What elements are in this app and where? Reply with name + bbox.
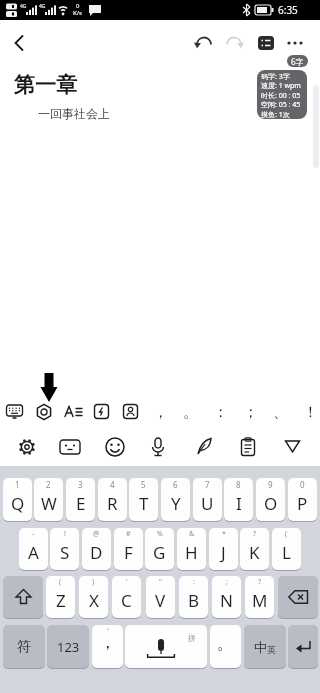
button[interactable]: 6 <box>161 478 190 521</box>
staticText: 2 <box>46 479 51 490</box>
staticText: 。 <box>183 403 198 422</box>
button[interactable]: # <box>114 528 143 570</box>
staticText: : <box>193 577 195 587</box>
button[interactable]: ? <box>245 576 274 618</box>
button[interactable] <box>10 33 30 53</box>
button[interactable]: 。 <box>176 398 204 426</box>
staticText: % <box>157 529 163 539</box>
button[interactable] <box>150 437 166 458</box>
button[interactable]: 、 <box>266 398 294 426</box>
button[interactable]: 5 <box>129 478 158 521</box>
button[interactable]: 2 <box>34 478 63 521</box>
staticText: X <box>89 589 99 612</box>
button[interactable]: 7 <box>193 478 222 521</box>
button[interactable]: ) <box>79 576 108 618</box>
button[interactable]: ' <box>112 576 141 618</box>
staticText: F <box>124 541 133 564</box>
button[interactable]: ( <box>46 576 75 618</box>
button[interactable]: 拼 <box>125 625 207 668</box>
button[interactable]: - <box>19 528 48 570</box>
staticText: M <box>252 589 268 612</box>
button[interactable]: 3 <box>66 478 95 521</box>
button[interactable]: ： <box>206 398 234 426</box>
staticText: 8 <box>236 479 241 490</box>
staticText: 速度: 1 wpm <box>261 81 301 91</box>
button[interactable]: 8 <box>224 478 253 521</box>
button[interactable] <box>5 403 25 422</box>
staticText: ( <box>59 577 62 587</box>
button[interactable]: ; <box>212 576 241 618</box>
staticText: T <box>139 492 149 515</box>
staticText: N <box>220 589 233 612</box>
button[interactable]: " <box>146 576 175 618</box>
button[interactable]: 123 <box>47 625 89 668</box>
staticText: 时长: 00 : 05 <box>261 91 301 101</box>
staticText: 拼 <box>188 633 196 643</box>
staticText: 9 <box>268 479 273 490</box>
button[interactable] <box>64 403 84 421</box>
button[interactable]: : <box>179 576 208 618</box>
staticText: " <box>159 577 162 587</box>
button[interactable] <box>286 34 304 52</box>
button[interactable]: 1 <box>3 478 32 521</box>
button[interactable] <box>278 576 318 618</box>
button[interactable]: 符 <box>3 625 45 668</box>
button[interactable] <box>3 576 43 618</box>
staticText: 5 <box>141 479 146 490</box>
button[interactable]: 0 <box>288 478 317 521</box>
staticText: 摸鱼: 1次 <box>261 110 290 119</box>
button[interactable]: * <box>209 528 238 570</box>
button[interactable]: ！ <box>296 398 320 426</box>
staticText: 码字: 3字 <box>261 72 290 82</box>
staticText: 4 <box>110 479 115 490</box>
staticText: 123 <box>57 638 80 656</box>
button[interactable]: ? <box>240 528 269 570</box>
button[interactable]: & <box>177 528 206 570</box>
staticText: L <box>282 541 291 564</box>
button[interactable] <box>195 34 213 52</box>
staticText: 6字 <box>291 56 304 67</box>
staticText: ， <box>153 403 168 422</box>
staticText: 、 <box>273 403 288 422</box>
staticText: 第一章 <box>14 72 77 98</box>
button[interactable] <box>240 437 256 457</box>
button[interactable] <box>16 436 38 458</box>
staticText: 一回事社会上 <box>38 106 110 121</box>
button[interactable]: @ <box>82 528 111 570</box>
staticText: A <box>28 541 39 564</box>
button[interactable]: ； <box>236 398 264 426</box>
button[interactable] <box>195 437 213 457</box>
staticText: U <box>201 492 214 515</box>
button[interactable]: 中 <box>244 625 286 668</box>
staticText: C <box>121 589 132 612</box>
button[interactable] <box>284 439 301 454</box>
button[interactable]: ( <box>272 528 301 570</box>
button[interactable]: ! <box>50 528 79 570</box>
staticText: S <box>60 541 70 564</box>
button[interactable]: 9 <box>256 478 285 521</box>
staticText: O <box>264 492 278 515</box>
staticText: 4G <box>39 3 46 10</box>
button[interactable]: ' <box>92 625 123 668</box>
button[interactable] <box>225 34 243 52</box>
button[interactable]: 4 <box>98 478 127 521</box>
button[interactable] <box>35 403 53 421</box>
button[interactable] <box>288 625 318 668</box>
staticText: 0 <box>76 2 80 10</box>
button[interactable] <box>104 436 126 458</box>
staticText: B <box>188 589 200 612</box>
button[interactable]: ， <box>146 398 174 426</box>
staticText: 0 <box>300 479 305 490</box>
button[interactable] <box>122 403 140 421</box>
button[interactable]: 。 <box>210 625 241 668</box>
button[interactable]: % <box>145 528 174 570</box>
staticText: ' <box>107 626 109 637</box>
button[interactable] <box>59 438 81 456</box>
staticText: K <box>249 541 260 564</box>
staticText: Z <box>56 589 66 612</box>
staticText: J <box>221 541 226 564</box>
staticText: @ <box>93 529 100 539</box>
button[interactable] <box>93 403 111 421</box>
button[interactable] <box>257 34 275 52</box>
staticText: 英 <box>267 644 276 655</box>
